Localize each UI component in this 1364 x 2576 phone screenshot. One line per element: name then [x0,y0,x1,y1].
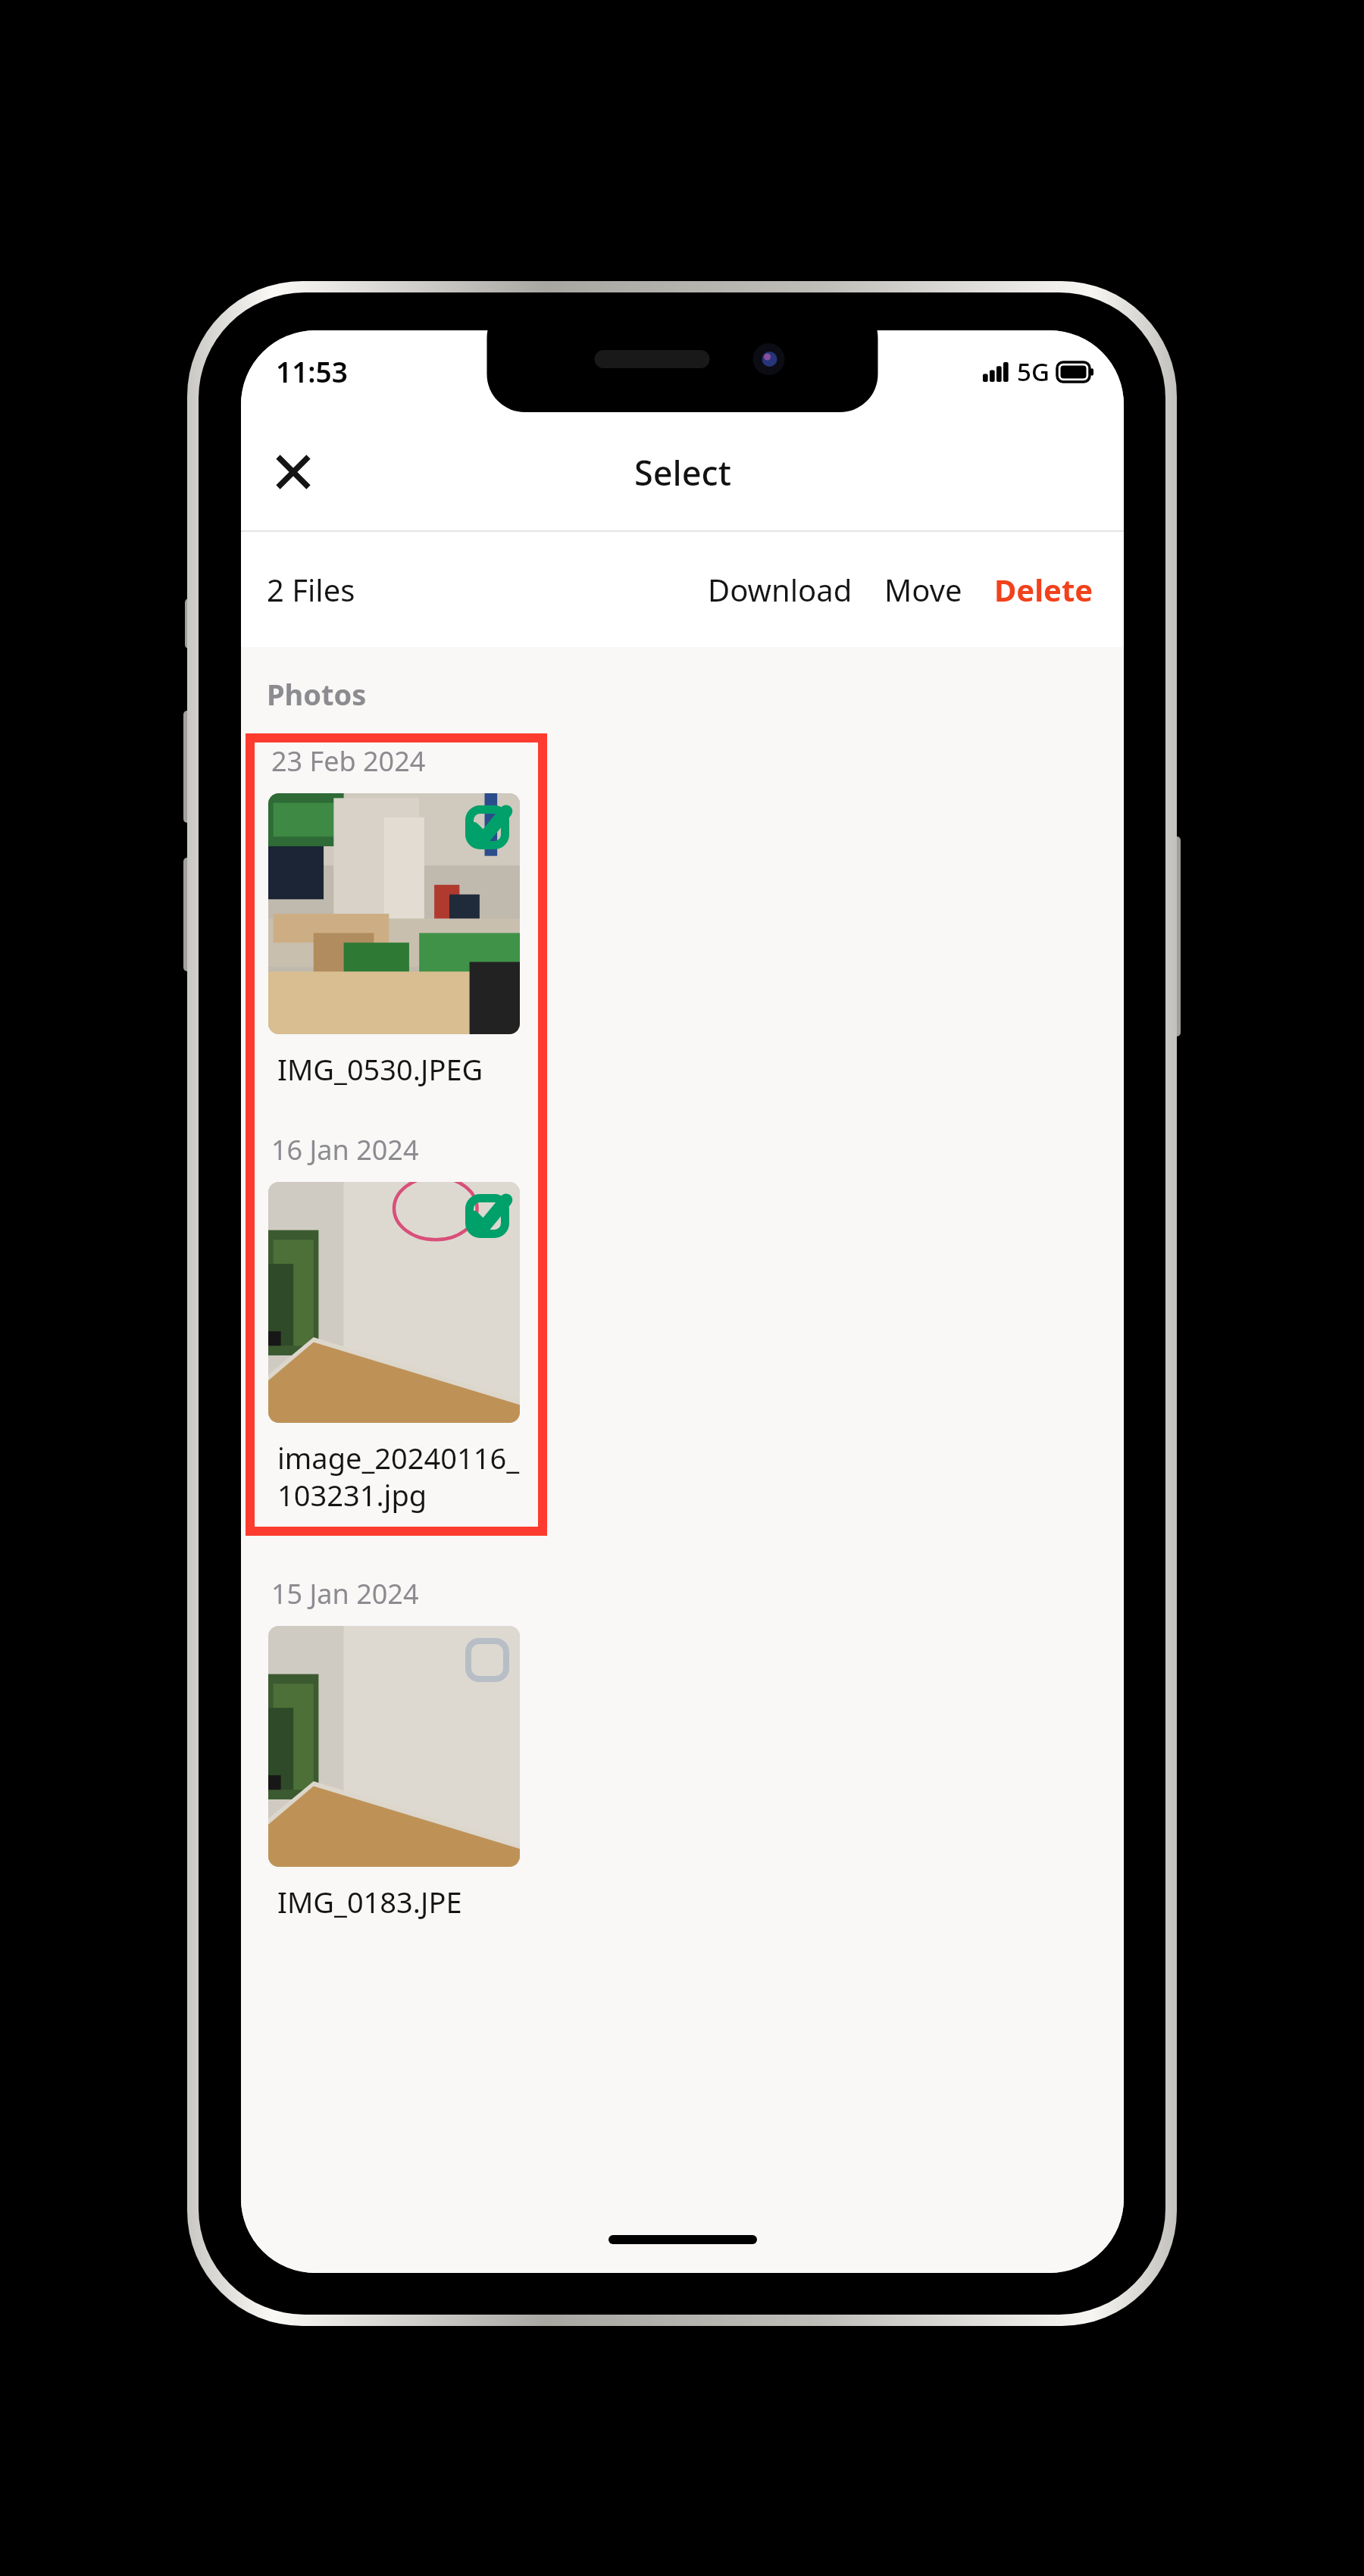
staticText: Photos [267,674,367,714]
staticText: IMG_0183.JPE [277,1882,462,1921]
staticText: image_20240116_103231.jpg [277,1438,527,1515]
button[interactable]: 16 Jan 2024 [255,1131,538,1515]
staticText: 15 Jan 2024 [271,1575,419,1612]
staticText: Delete [994,569,1093,610]
staticText: 11:53 [276,352,348,390]
staticText: IMG_0530.JPEG [277,1049,483,1089]
button[interactable]: Download [700,558,860,621]
staticText: 5G [1017,355,1050,389]
button[interactable]: Close [261,439,326,505]
button[interactable]: Delete [987,558,1101,621]
staticText: 16 Jan 2024 [271,1131,419,1168]
staticText: 23 Feb 2024 [271,742,426,780]
staticText: Move [884,569,962,610]
button[interactable]: 15 Jan 2024 [255,1575,556,1921]
button[interactable]: 23 Feb 2024 [255,742,538,1089]
staticText: Select [634,449,731,496]
staticText: Download [708,569,852,610]
staticText: 2 Files [267,569,355,610]
button[interactable]: Move [877,558,970,621]
